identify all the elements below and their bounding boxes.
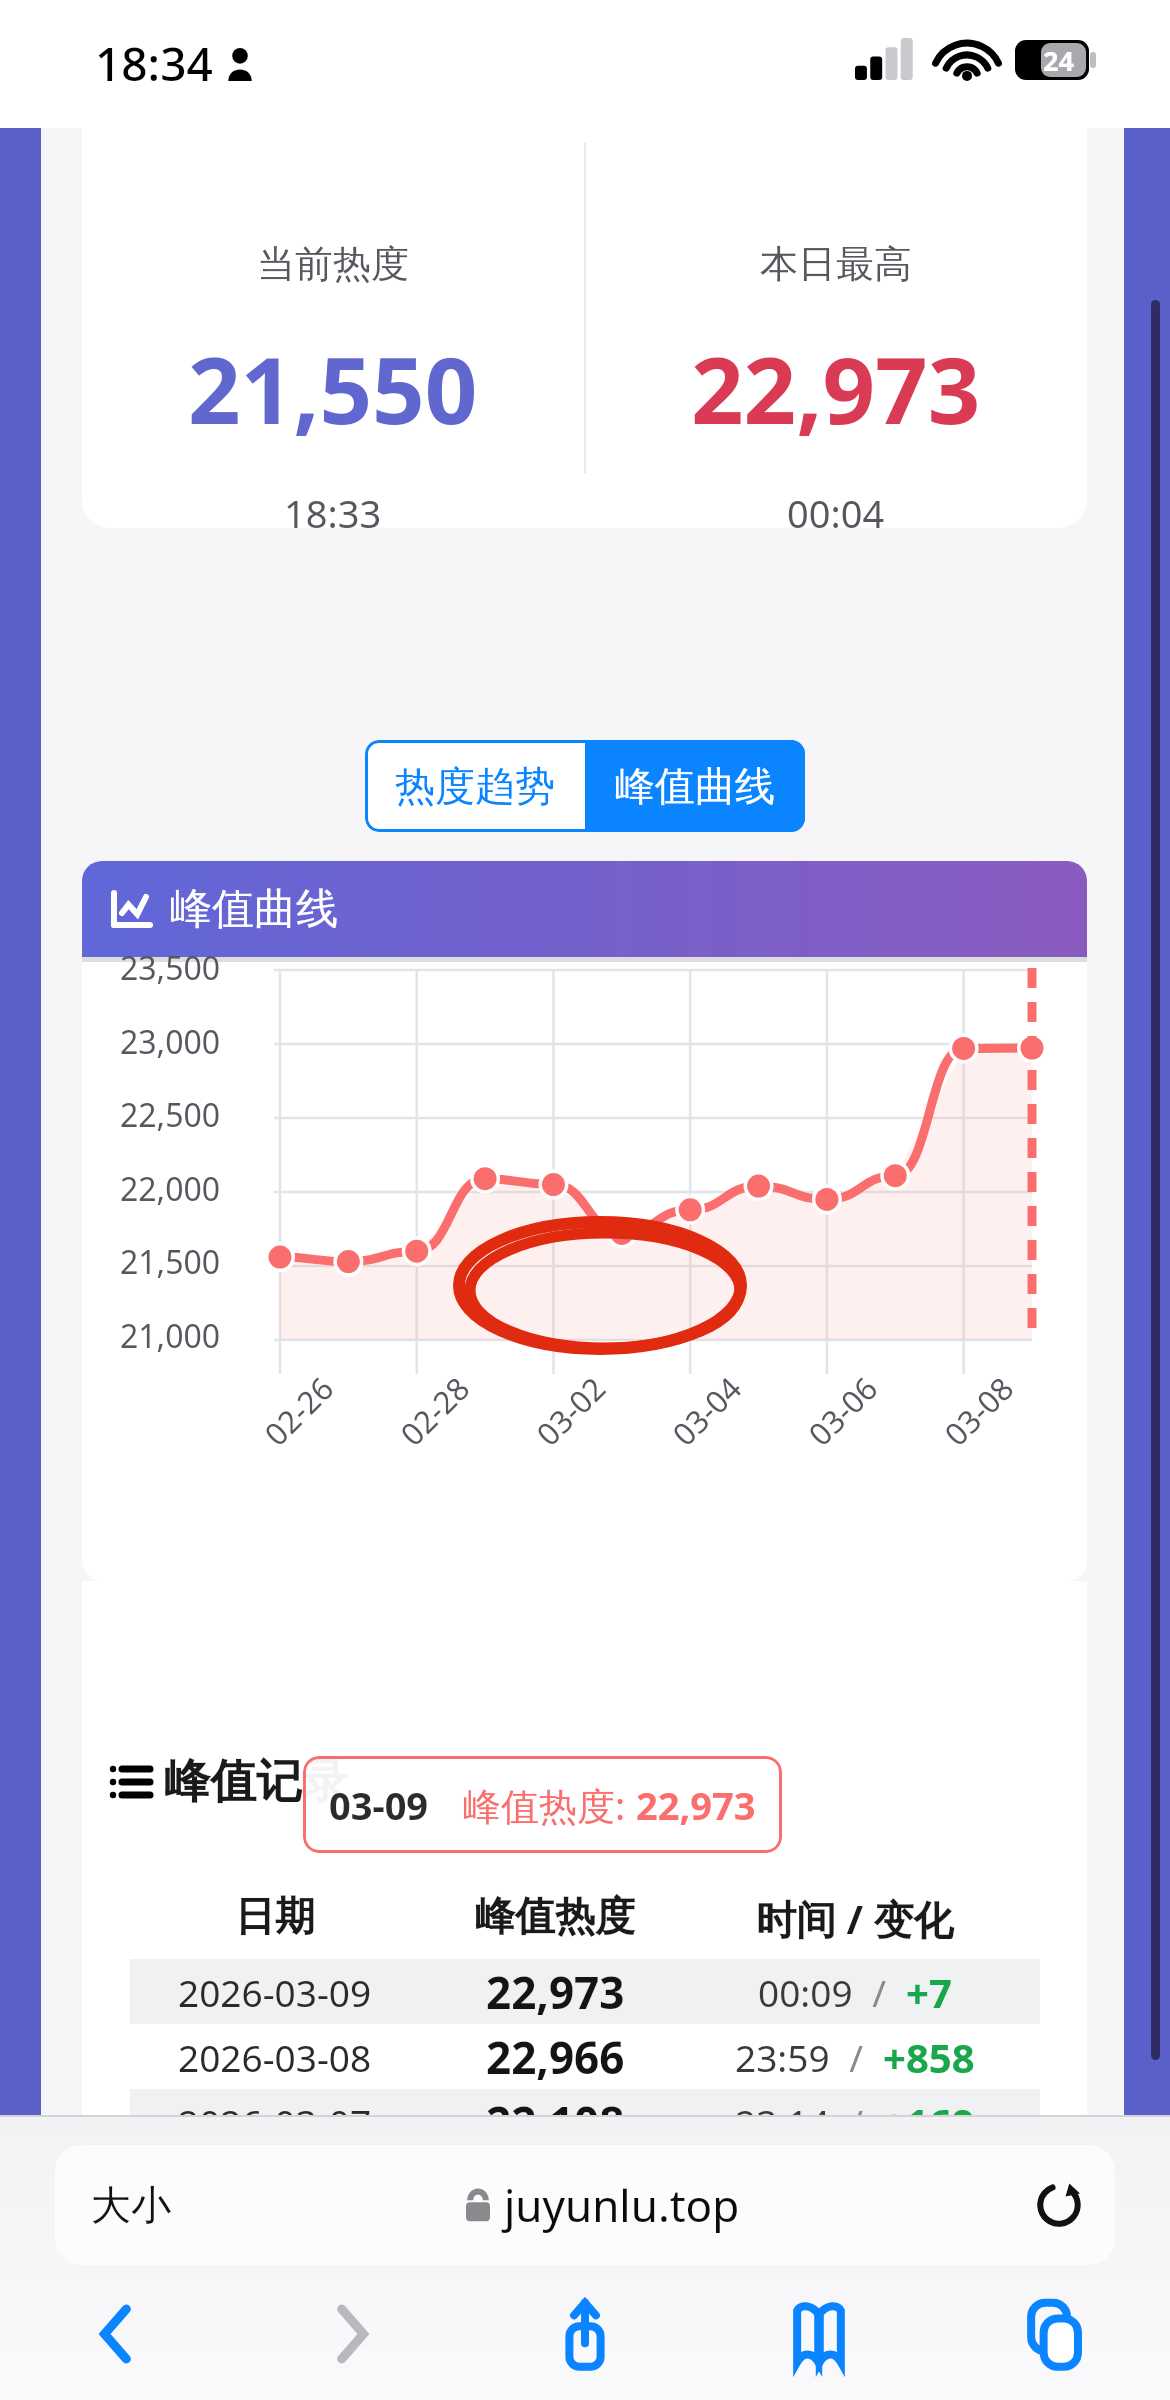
- staticText: 22,973: [691, 326, 981, 451]
- staticText: 23,500: [120, 946, 221, 990]
- staticText: 18:33: [284, 487, 382, 528]
- staticText: 峰值热度: [475, 1891, 635, 1941]
- button[interactable]: 峰值曲线: [82, 861, 1087, 957]
- staticText: /: [853, 1967, 906, 2017]
- staticText: 当前热度: [257, 240, 409, 288]
- button[interactable]: Reload: [1033, 2179, 1085, 2231]
- staticText: 本日最高: [760, 240, 912, 288]
- staticText: 02-28: [391, 1367, 478, 1454]
- staticText: 22,966: [486, 2027, 625, 2087]
- staticText: 03-06: [799, 1367, 886, 1454]
- staticText: 24: [1043, 42, 1074, 79]
- staticText: 日期: [235, 1891, 315, 1941]
- staticText: 18:34: [95, 32, 213, 95]
- staticText: 峰值热度:: [463, 1779, 636, 1831]
- staticText: /: [830, 2097, 883, 2147]
- staticText: 23,000: [120, 1020, 221, 1064]
- staticText: 时间 / 变化: [756, 1891, 954, 1946]
- staticText: +7: [906, 1965, 952, 2019]
- staticText: 00:04: [787, 487, 885, 528]
- staticText: 23:59: [735, 2032, 830, 2082]
- button[interactable]: Share: [468, 2279, 702, 2389]
- button[interactable]: 2026-03-08: [130, 2024, 1040, 2089]
- button[interactable]: 热度趋势: [365, 740, 585, 832]
- staticText: 2026-03-07: [178, 2097, 372, 2147]
- button[interactable]: 大小: [55, 2145, 1115, 2265]
- staticText: 03-02: [527, 1367, 614, 1454]
- button[interactable]: 2026-03-07: [130, 2089, 1040, 2154]
- staticText: +169: [883, 2095, 975, 2149]
- staticText: 03-08: [935, 1367, 1022, 1454]
- staticText: 22,973: [636, 1779, 756, 1831]
- staticText: 03-09: [329, 1779, 429, 1831]
- staticText: 03-04: [663, 1367, 750, 1454]
- staticText: 2026-03-08: [178, 2032, 372, 2082]
- button[interactable]: Bookmarks: [702, 2279, 936, 2389]
- staticText: 22,500: [120, 1093, 221, 1137]
- staticText: juyunlu.top: [504, 2175, 740, 2235]
- staticText: 22,000: [120, 1167, 221, 1211]
- staticText: 22,108: [486, 2092, 625, 2152]
- button[interactable]: 峰值曲线: [585, 740, 805, 832]
- button[interactable]: 峰值记录: [110, 1753, 348, 1811]
- staticText: 21,500: [120, 1240, 221, 1284]
- button[interactable]: 2026-03-09: [130, 1959, 1040, 2024]
- staticText: 峰值曲线: [615, 761, 775, 811]
- staticText: 00:09: [758, 1967, 853, 2017]
- button[interactable]: Forward: [234, 2279, 468, 2389]
- staticText: 23:14: [735, 2097, 830, 2147]
- staticText: 大小: [91, 2180, 171, 2230]
- staticText: 峰值曲线: [170, 883, 338, 936]
- staticText: 02-26: [255, 1367, 342, 1454]
- staticText: 22,973: [486, 1962, 625, 2022]
- button[interactable]: 当前热度: [82, 88, 1087, 528]
- staticText: 2026-03-09: [178, 1967, 372, 2017]
- staticText: +858: [883, 2030, 975, 2084]
- staticText: 热度趋势: [395, 761, 555, 811]
- button[interactable]: Back: [0, 2279, 234, 2389]
- staticText: 21,550: [188, 326, 478, 451]
- staticText: /: [830, 2032, 883, 2082]
- button[interactable]: Tabs: [936, 2279, 1170, 2389]
- staticText: 峰值记录: [164, 1753, 348, 1811]
- staticText: 21,000: [120, 1314, 221, 1358]
